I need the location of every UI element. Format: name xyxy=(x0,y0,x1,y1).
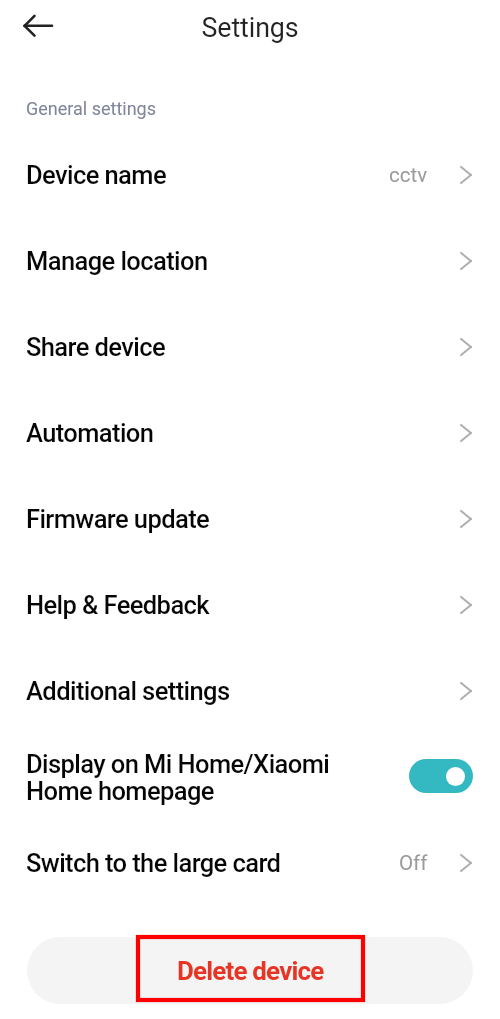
staticText: Firmware update xyxy=(26,504,459,534)
staticText: General settings xyxy=(26,98,156,119)
staticText: Delete device xyxy=(177,956,324,986)
staticText: Switch to the large card xyxy=(26,848,399,878)
button[interactable]: Display on Mi Home/Xiaomi Home homepage xyxy=(0,734,500,820)
staticText: Manage location xyxy=(26,246,459,276)
button[interactable]: Display on homepage toggle xyxy=(409,759,473,793)
button[interactable]: Switch to the large card xyxy=(0,820,500,906)
staticText: Device name xyxy=(26,160,389,190)
staticText: Off xyxy=(399,851,428,875)
staticText: Help & Feedback xyxy=(26,590,459,620)
staticText: Additional settings xyxy=(26,676,459,706)
button[interactable]: Firmware update xyxy=(0,476,500,562)
button[interactable]: Help & Feedback xyxy=(0,562,500,648)
button[interactable]: Back xyxy=(11,0,65,54)
staticText: cctv xyxy=(389,163,428,187)
button[interactable]: Manage location xyxy=(0,218,500,304)
button[interactable]: Delete device xyxy=(27,937,473,1004)
staticText: Share device xyxy=(26,332,459,362)
button[interactable]: Additional settings xyxy=(0,648,500,734)
button[interactable]: Share device xyxy=(0,304,500,390)
staticText: Settings xyxy=(201,12,299,43)
staticText: Automation xyxy=(26,418,459,448)
staticText: Display on Mi Home/Xiaomi Home homepage xyxy=(26,749,409,806)
button[interactable]: Device name xyxy=(0,132,500,218)
button[interactable]: Automation xyxy=(0,390,500,476)
